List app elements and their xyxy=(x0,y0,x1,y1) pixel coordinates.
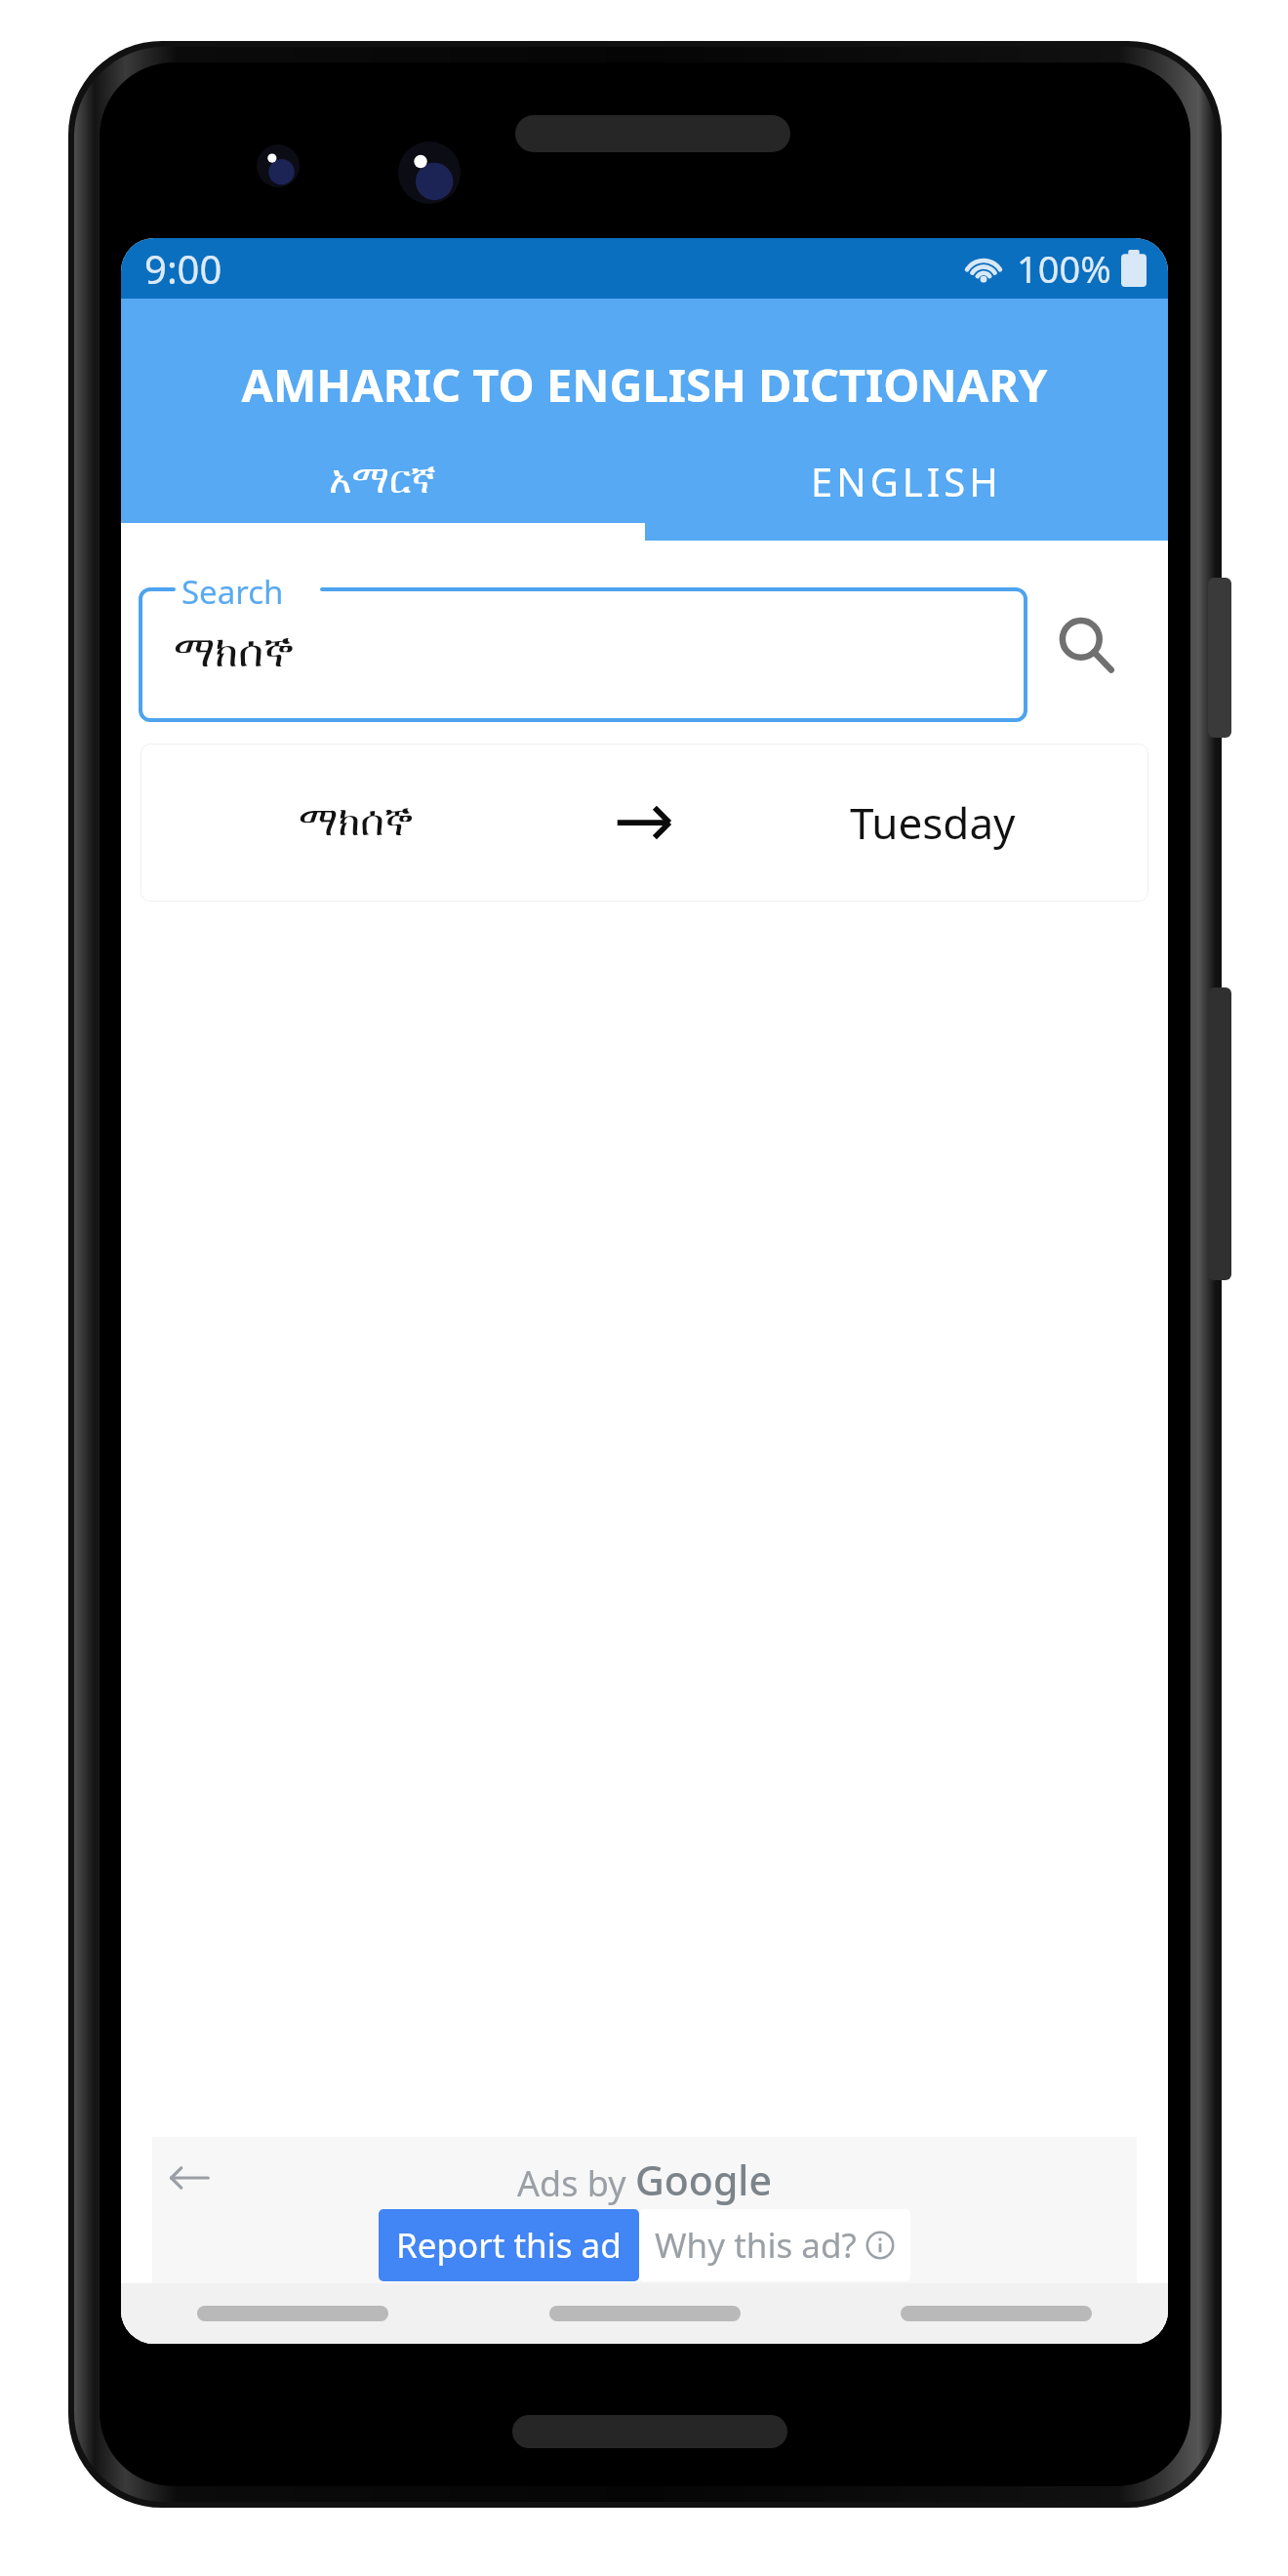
button[interactable]: ENGLISH xyxy=(644,422,1168,541)
staticText: ማክሰኞ xyxy=(299,802,414,843)
button[interactable]: Report this ad xyxy=(379,2209,639,2281)
staticText: Report this ad xyxy=(396,2222,622,2269)
staticText: 100% xyxy=(1017,243,1111,294)
staticText: Search xyxy=(181,570,284,614)
button[interactable]: Back xyxy=(160,2149,219,2207)
staticText: Tuesday xyxy=(850,793,1016,852)
staticText: Why this ad? xyxy=(655,2222,865,2269)
button[interactable]: Search xyxy=(1026,585,1148,708)
staticText: 9:00 xyxy=(144,242,222,295)
staticText: ENGLISH xyxy=(811,455,1002,507)
button[interactable]: አማርኛ xyxy=(121,422,644,541)
staticText: Ads by xyxy=(517,2159,635,2207)
staticText: አማርኛ xyxy=(329,462,436,501)
button[interactable]: Navigation xyxy=(549,2306,741,2321)
button[interactable]: Search xyxy=(141,574,1026,720)
staticText: Google xyxy=(635,2153,772,2207)
staticText: ማክሰኞ xyxy=(174,632,294,675)
button[interactable]: Why this ad? xyxy=(639,2209,910,2281)
staticText: AMHARIC TO ENGLISH DICTIONARY xyxy=(241,353,1048,416)
button[interactable]: Navigation xyxy=(197,2306,388,2321)
button[interactable]: Navigation xyxy=(901,2306,1092,2321)
button[interactable]: ማክሰኞ xyxy=(141,744,1148,902)
